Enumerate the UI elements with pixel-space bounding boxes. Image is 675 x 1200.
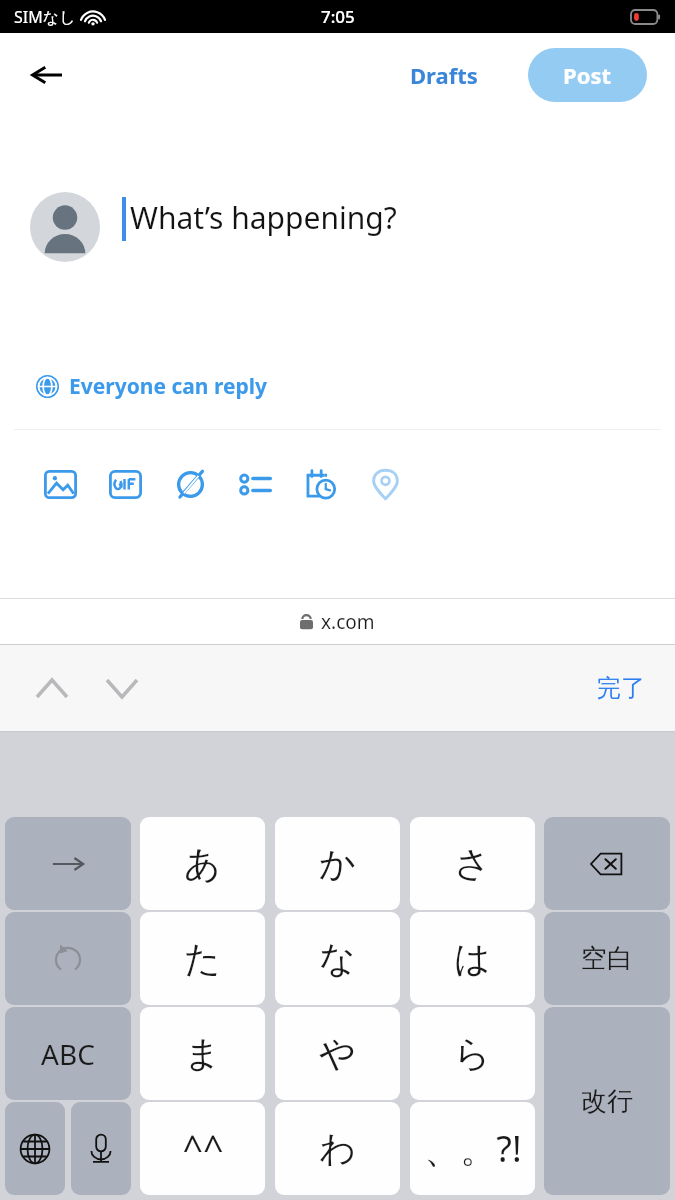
staticText: 完了 [597, 673, 645, 703]
button[interactable]: さ [410, 817, 535, 910]
button[interactable]: ABC [5, 1007, 131, 1100]
button[interactable]: Everyone can reply [32, 368, 271, 405]
button[interactable]: な [275, 912, 400, 1005]
staticText: や [319, 1031, 356, 1076]
staticText: Post [563, 60, 612, 90]
button[interactable]: あ [140, 817, 265, 910]
button[interactable]: や [275, 1007, 400, 1100]
staticText: What’s happening? [130, 197, 397, 238]
button[interactable]: Back [18, 46, 76, 104]
staticText: Drafts [410, 60, 478, 90]
staticText: ま [184, 1031, 221, 1076]
button[interactable]: た [140, 912, 265, 1005]
button[interactable]: か [275, 817, 400, 910]
staticText: あ [184, 841, 221, 886]
staticText: ^^ [182, 1124, 224, 1173]
button[interactable]: Drafts [404, 54, 484, 96]
button[interactable]: Delete [544, 817, 670, 910]
button[interactable]: Switch keyboard [5, 1102, 65, 1195]
staticText: SIMなし [14, 6, 76, 28]
button[interactable]: 、。?! [410, 1102, 535, 1195]
button[interactable]: Poll [223, 452, 288, 517]
button[interactable]: Schedule post [288, 452, 353, 517]
staticText: 、。?! [424, 1124, 522, 1173]
button[interactable]: 改行 [544, 1007, 670, 1195]
staticText: わ [319, 1126, 356, 1171]
button[interactable]: は [410, 912, 535, 1005]
button[interactable]: Add photo [28, 452, 93, 517]
staticText: さ [454, 841, 491, 886]
staticText: た [184, 936, 221, 981]
staticText: Everyone can reply [69, 372, 267, 401]
button[interactable]: Add location [353, 452, 418, 517]
button[interactable]: Add poll [158, 452, 223, 517]
button[interactable]: Dictation [71, 1102, 131, 1195]
button[interactable]: わ [275, 1102, 400, 1195]
button[interactable]: Next candidate [5, 817, 131, 910]
staticText: 改行 [581, 1085, 633, 1118]
button[interactable]: Add GIF [93, 452, 158, 517]
staticText: 7:05 [321, 5, 355, 28]
button[interactable]: Next field [96, 662, 148, 714]
button[interactable]: 完了 [589, 667, 653, 709]
button[interactable]: Previous field [26, 662, 78, 714]
staticText: 空白 [581, 942, 633, 975]
button[interactable]: ら [410, 1007, 535, 1100]
button[interactable]: ま [140, 1007, 265, 1100]
button[interactable]: ^^ [140, 1102, 265, 1195]
button[interactable]: Post [528, 48, 647, 102]
button[interactable]: Undo [5, 912, 131, 1005]
button[interactable]: 空白 [544, 912, 670, 1005]
staticText: は [454, 936, 491, 981]
staticText: な [319, 936, 356, 981]
staticText: ABC [41, 1035, 95, 1073]
staticText: ら [454, 1031, 491, 1076]
staticText: x.com [321, 609, 375, 635]
staticText: か [319, 841, 356, 886]
